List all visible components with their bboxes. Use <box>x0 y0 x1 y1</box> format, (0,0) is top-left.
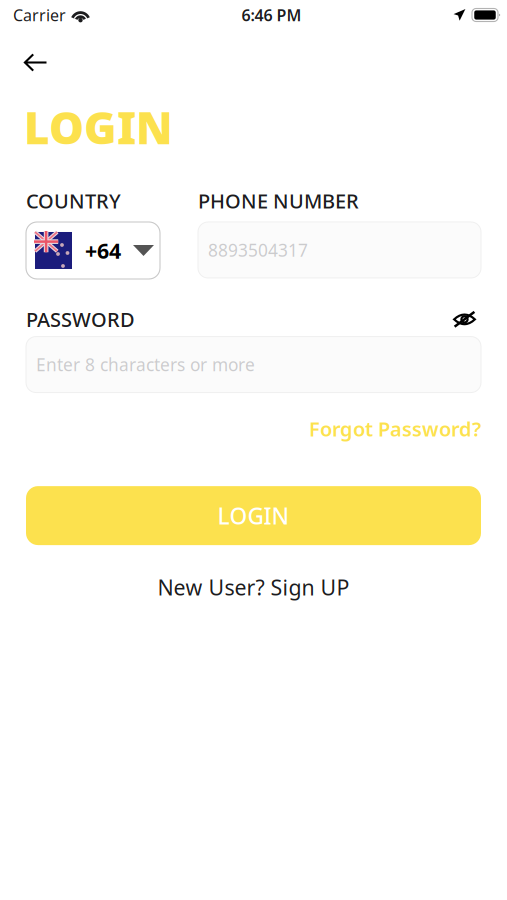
button[interactable]: LOGIN <box>26 486 481 545</box>
staticText: Enter 8 characters or more <box>36 353 255 376</box>
staticText: PHONE NUMBER <box>198 187 359 214</box>
staticText: +64 <box>85 236 121 265</box>
staticText: Forgot Password? <box>309 415 481 442</box>
button[interactable]: Back <box>11 44 60 81</box>
staticText: COUNTRY <box>26 187 121 214</box>
staticText: New User? Sign UP <box>157 573 349 601</box>
staticText: LOGIN <box>24 98 173 156</box>
button[interactable]: Forgot Password? <box>309 415 481 442</box>
staticText: LOGIN <box>217 501 289 531</box>
staticText: 6:46 PM <box>241 4 301 26</box>
staticText: Carrier <box>13 4 66 26</box>
button[interactable]: New User? Sign UP <box>157 567 349 607</box>
staticText: PASSWORD <box>26 306 135 333</box>
button[interactable]: Country code +64 <box>26 222 160 279</box>
button[interactable]: Show password <box>453 311 481 328</box>
staticText: 8893504317 <box>208 238 308 261</box>
